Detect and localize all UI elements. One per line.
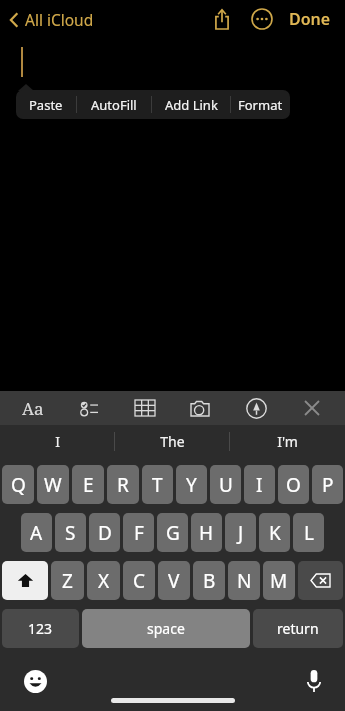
staticText: Aa <box>22 397 44 420</box>
staticText: W <box>44 472 62 498</box>
button[interactable]: Q <box>2 465 34 504</box>
button[interactable]: T <box>142 465 173 504</box>
button[interactable]: F <box>123 513 154 552</box>
button[interactable]: R <box>107 465 139 504</box>
staticText: R <box>117 472 129 498</box>
staticText: C <box>133 568 146 594</box>
button[interactable]: Add Link <box>152 90 230 119</box>
button[interactable]: J <box>225 513 256 552</box>
staticText: F <box>134 520 144 546</box>
button[interactable]: I <box>244 465 275 504</box>
button[interactable]: Close keyboard <box>289 391 335 425</box>
staticText: I'm <box>277 432 298 451</box>
staticText: K <box>269 520 281 546</box>
staticText: A <box>30 520 43 546</box>
staticText: J <box>238 520 244 546</box>
button[interactable]: 123 <box>2 609 79 648</box>
staticText: Format <box>238 96 283 114</box>
staticText: Y <box>186 472 197 498</box>
staticText: B <box>203 568 216 594</box>
button[interactable]: N <box>228 561 260 600</box>
staticText: S <box>65 520 76 546</box>
staticText: T <box>152 472 163 498</box>
staticText: X <box>98 568 110 594</box>
button[interactable]: Table <box>122 391 168 425</box>
staticText: P <box>322 472 334 498</box>
staticText: The <box>160 432 185 451</box>
button[interactable]: S <box>55 513 86 552</box>
button[interactable]: AutoFill <box>77 90 151 119</box>
staticText: 123 <box>28 619 53 638</box>
button[interactable]: W <box>37 465 69 504</box>
button[interactable]: Markup <box>233 391 279 425</box>
button[interactable]: Share <box>205 2 239 36</box>
button[interactable]: Dictation <box>297 664 331 698</box>
staticText: All iCloud <box>25 9 94 30</box>
button[interactable]: D <box>89 513 120 552</box>
button[interactable]: H <box>191 513 222 552</box>
staticText: return <box>277 619 319 638</box>
staticText: I <box>256 472 263 498</box>
button[interactable]: More options <box>245 2 279 36</box>
button[interactable]: P <box>312 465 343 504</box>
button[interactable]: X <box>87 561 120 600</box>
button[interactable]: Y <box>176 465 207 504</box>
button[interactable]: Shift <box>2 561 48 600</box>
button[interactable]: K <box>259 513 290 552</box>
button[interactable]: L <box>293 513 324 552</box>
button[interactable]: Checklist <box>66 391 112 425</box>
staticText: Q <box>11 472 26 498</box>
button[interactable]: A <box>21 513 52 552</box>
button[interactable]: Paste <box>16 90 76 119</box>
staticText: M <box>270 568 288 594</box>
button[interactable]: I'm <box>230 425 345 458</box>
button[interactable]: I <box>0 425 115 458</box>
button[interactable]: G <box>157 513 188 552</box>
button[interactable]: Emoji <box>18 664 52 698</box>
staticText: Z <box>62 568 73 594</box>
button[interactable]: space <box>82 609 250 648</box>
staticText: V <box>168 568 180 594</box>
button[interactable]: Z <box>51 561 84 600</box>
staticText: O <box>286 472 301 498</box>
button[interactable]: Format <box>231 90 290 119</box>
button[interactable]: Delete <box>298 561 343 600</box>
staticText: space <box>147 619 185 638</box>
button[interactable]: return <box>253 609 343 648</box>
button[interactable]: B <box>193 561 225 600</box>
button[interactable]: Text format <box>10 391 56 425</box>
button[interactable]: The <box>115 425 230 458</box>
button[interactable]: E <box>72 465 104 504</box>
button[interactable]: All iCloud <box>6 5 96 34</box>
staticText: Add Link <box>165 96 218 114</box>
staticText: D <box>98 520 112 546</box>
button[interactable]: Camera <box>177 391 223 425</box>
button[interactable]: C <box>123 561 155 600</box>
button[interactable]: U <box>210 465 241 504</box>
staticText: U <box>219 472 233 498</box>
staticText: H <box>199 520 214 546</box>
staticText: Done <box>289 8 331 30</box>
staticText: G <box>166 520 180 546</box>
button[interactable]: V <box>158 561 190 600</box>
staticText: Paste <box>29 96 63 114</box>
staticText: L <box>304 520 314 546</box>
button[interactable]: Done <box>283 2 337 36</box>
staticText: I <box>55 432 60 451</box>
button[interactable]: M <box>263 561 295 600</box>
staticText: E <box>83 472 94 498</box>
staticText: N <box>237 568 252 594</box>
staticText: AutoFill <box>91 96 137 114</box>
button[interactable]: O <box>278 465 309 504</box>
